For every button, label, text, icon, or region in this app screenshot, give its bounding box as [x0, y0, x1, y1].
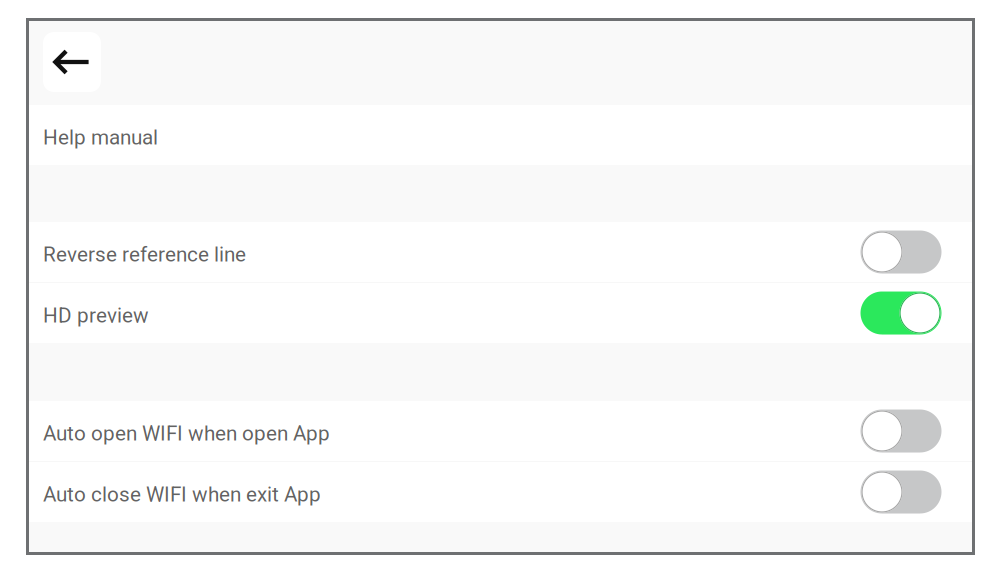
staticText: Auto close WIFI when exit App: [43, 482, 321, 507]
button[interactable]: Back: [43, 32, 101, 92]
button[interactable]: Reverse reference line: [29, 222, 972, 282]
button[interactable]: Auto open WIFI when open App: [29, 401, 972, 461]
staticText: Help manual: [43, 125, 158, 150]
staticText: Reverse reference line: [43, 242, 246, 267]
button[interactable]: Help manual: [29, 105, 972, 165]
button[interactable]: HD preview: [29, 283, 972, 343]
staticText: Auto open WIFI when open App: [43, 421, 330, 446]
staticText: HD preview: [43, 303, 149, 328]
button[interactable]: Auto close WIFI when exit App: [29, 462, 972, 522]
